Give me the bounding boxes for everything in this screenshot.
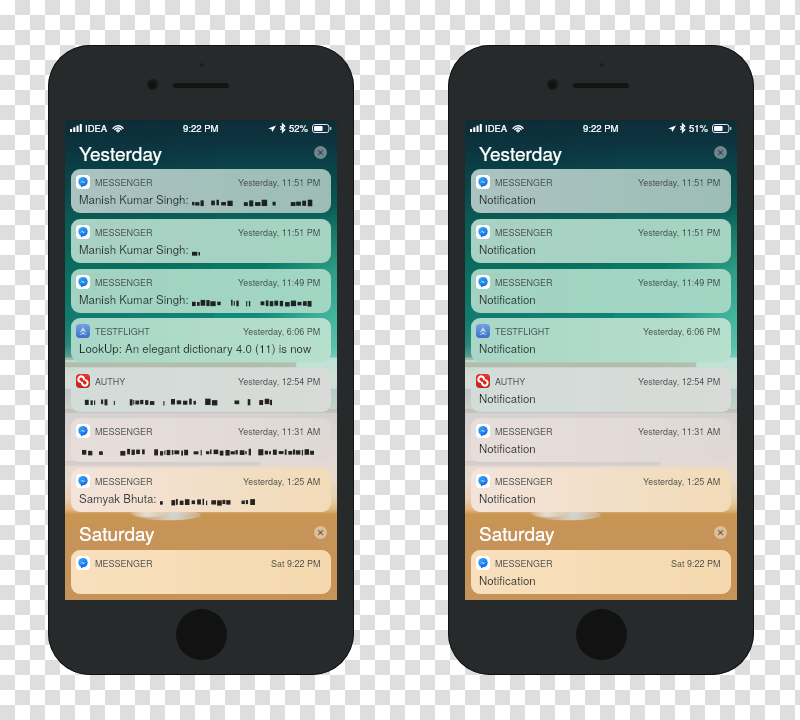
- staticText: MESSENGER: [95, 226, 153, 239]
- staticText: Yesterday, 11:51 PM: [238, 226, 321, 239]
- staticText: Yesterday: [79, 139, 162, 165]
- staticText: MESSENGER: [95, 276, 153, 289]
- button[interactable]: MESSENGER: [471, 169, 731, 213]
- staticText: MESSENGER: [495, 276, 553, 289]
- button[interactable]: Clear Yesterday notifications: [714, 146, 727, 159]
- staticText: MESSENGER: [495, 557, 553, 570]
- staticText: MESSENGER: [495, 475, 553, 488]
- staticText: AUTHY: [95, 375, 126, 388]
- staticText: Yesterday, 11:49 PM: [238, 276, 321, 289]
- staticText: MESSENGER: [95, 557, 153, 570]
- button[interactable]: MESSENGER: [71, 269, 331, 313]
- staticText: Yesterday: [479, 139, 562, 165]
- staticText: Notification: [479, 241, 536, 257]
- button[interactable]: MESSENGER: [71, 219, 331, 263]
- button[interactable]: Clear Saturday notifications: [714, 526, 727, 539]
- staticText: TESTFLIGHT: [495, 325, 550, 338]
- staticText: Manish Kumar Singh:: [79, 291, 189, 307]
- button[interactable]: TESTFLIGHT: [471, 318, 731, 362]
- staticText: Notification: [479, 490, 536, 506]
- staticText: TESTFLIGHT: [95, 325, 150, 338]
- staticText: IDEA: [485, 121, 508, 135]
- staticText: Yesterday, 11:51 PM: [638, 176, 721, 189]
- button[interactable]: AUTHY: [71, 368, 331, 412]
- button[interactable]: Clear Saturday notifications: [314, 526, 327, 539]
- staticText: IDEA: [85, 121, 108, 135]
- staticText: Yesterday, 6:06 PM: [643, 325, 721, 338]
- staticText: Yesterday, 11:31 AM: [238, 425, 321, 438]
- staticText: Notification: [479, 340, 536, 356]
- button[interactable]: MESSENGER: [71, 418, 331, 462]
- staticText: Yesterday, 11:31 AM: [638, 425, 721, 438]
- staticText: 52%: [289, 121, 309, 135]
- staticText: Sat 9:22 PM: [671, 557, 721, 570]
- staticText: 9:22 PM: [183, 121, 219, 135]
- staticText: Saturday: [79, 519, 155, 545]
- staticText: Yesterday, 1:25 AM: [643, 475, 721, 488]
- staticText: Yesterday, 1:25 AM: [243, 475, 321, 488]
- button[interactable]: MESSENGER: [71, 468, 331, 512]
- staticText: Yesterday, 11:51 PM: [638, 226, 721, 239]
- staticText: Yesterday, 11:51 PM: [238, 176, 321, 189]
- button[interactable]: TESTFLIGHT: [71, 318, 331, 362]
- staticText: Samyak Bhuta:: [79, 490, 157, 506]
- staticText: Yesterday, 12:54 PM: [638, 375, 721, 388]
- staticText: Notification: [479, 291, 536, 307]
- staticText: Yesterday, 6:06 PM: [243, 325, 321, 338]
- staticText: Yesterday, 12:54 PM: [238, 375, 321, 388]
- button[interactable]: MESSENGER: [471, 269, 731, 313]
- staticText: Manish Kumar Singh:: [79, 241, 189, 257]
- staticText: Notification: [479, 390, 536, 406]
- staticText: Notification: [479, 572, 536, 588]
- staticText: 51%: [689, 121, 709, 135]
- button[interactable]: Clear Yesterday notifications: [314, 146, 327, 159]
- button[interactable]: MESSENGER: [471, 418, 731, 462]
- staticText: 9:22 PM: [583, 121, 619, 135]
- staticText: Notification: [479, 191, 536, 207]
- staticText: Yesterday, 11:49 PM: [638, 276, 721, 289]
- staticText: MESSENGER: [95, 425, 153, 438]
- button[interactable]: MESSENGER: [471, 468, 731, 512]
- staticText: MESSENGER: [495, 425, 553, 438]
- staticText: Notification: [479, 440, 536, 456]
- button[interactable]: MESSENGER: [71, 550, 331, 594]
- staticText: MESSENGER: [495, 176, 553, 189]
- staticText: LookUp: An elegant dictionary 4.0 (11) i…: [79, 340, 312, 356]
- button[interactable]: MESSENGER: [71, 169, 331, 213]
- button[interactable]: MESSENGER: [471, 219, 731, 263]
- staticText: Saturday: [479, 519, 555, 545]
- staticText: AUTHY: [495, 375, 526, 388]
- staticText: MESSENGER: [95, 176, 153, 189]
- button[interactable]: MESSENGER: [471, 550, 731, 594]
- staticText: Sat 9:22 PM: [271, 557, 321, 570]
- staticText: MESSENGER: [495, 226, 553, 239]
- staticText: MESSENGER: [95, 475, 153, 488]
- button[interactable]: AUTHY: [471, 368, 731, 412]
- staticText: Manish Kumar Singh:: [79, 191, 189, 207]
